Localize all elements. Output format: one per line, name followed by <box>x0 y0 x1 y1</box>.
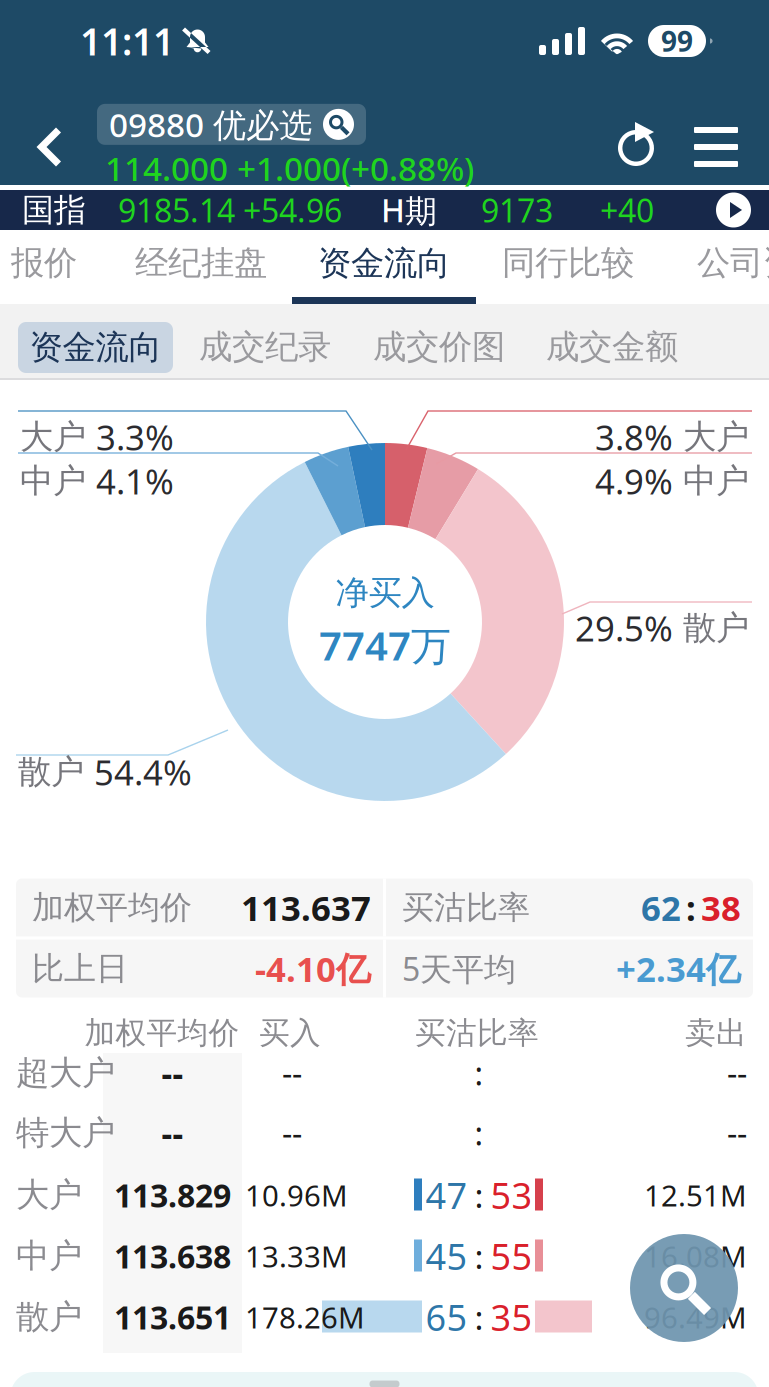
staticText: 114.000 +1.000(+0.88%) <box>105 146 474 190</box>
button[interactable]: 同行比较 <box>476 230 660 296</box>
staticText: 45 <box>425 1232 467 1280</box>
staticText: -- <box>161 1051 183 1095</box>
button[interactable]: 成交纪录 <box>190 322 340 372</box>
staticText: 11:11 <box>80 16 174 66</box>
staticText: 大户 <box>16 1174 82 1215</box>
staticText: -4.10亿 <box>255 945 371 991</box>
staticText: 178.26M <box>245 1297 365 1336</box>
button[interactable]: 资金流向 <box>292 230 476 304</box>
staticText: 净买入 <box>335 572 434 613</box>
button[interactable]: Menu <box>685 99 747 195</box>
button[interactable]: Back <box>0 99 97 195</box>
staticText: 55 <box>490 1232 532 1280</box>
staticText: 买沽比率 <box>402 888 530 927</box>
staticText: 62 <box>641 884 681 930</box>
staticText: : <box>474 1112 483 1154</box>
staticText: 卖出 <box>685 1014 747 1052</box>
staticText: 经纪挂盘 <box>135 242 267 283</box>
staticText: 99 <box>661 22 693 60</box>
staticText: 29.5% <box>575 605 673 651</box>
staticText: 10.96M <box>245 1175 348 1214</box>
button[interactable]: 报价 <box>0 230 104 296</box>
staticText: 中户 <box>20 460 86 501</box>
staticText: -- <box>727 1112 747 1154</box>
button[interactable]: Search <box>630 1234 738 1342</box>
staticText: 资金流向 <box>318 243 450 284</box>
staticText: 散户 <box>16 1296 82 1337</box>
staticText: 65 <box>425 1293 467 1341</box>
staticText: 9173 <box>481 189 553 231</box>
staticText: H期 <box>381 189 437 231</box>
staticText: -- <box>727 1052 747 1094</box>
staticText: 9185.14 <box>118 189 235 231</box>
staticText: 同行比较 <box>502 242 634 283</box>
staticText: : <box>686 884 696 930</box>
staticText: 散户 <box>683 607 749 648</box>
staticText: 比上日 <box>32 949 128 988</box>
staticText: +54.96 <box>243 189 342 231</box>
staticText: 3.8% <box>595 414 673 460</box>
staticText: 成交纪录 <box>199 326 331 367</box>
staticText: 加权平均价 <box>84 1014 239 1052</box>
staticText: 5天平均 <box>402 947 516 990</box>
button[interactable]: Refresh <box>601 99 673 195</box>
staticText: 53 <box>490 1171 532 1219</box>
staticText: : <box>474 1295 483 1339</box>
staticText: 大户 <box>683 416 749 457</box>
staticText: -- <box>282 1052 302 1094</box>
staticText: 超大户 <box>16 1052 115 1093</box>
staticText: +2.34亿 <box>616 945 741 991</box>
staticText: 国指 <box>22 190 86 230</box>
staticText: 买沽比率 <box>415 1014 539 1052</box>
staticText: 35 <box>490 1293 532 1341</box>
staticText: 特大户 <box>16 1112 115 1153</box>
staticText: -- <box>161 1111 183 1155</box>
button[interactable]: 09880 优必选 <box>97 104 366 145</box>
staticText: 公司资 <box>697 242 769 283</box>
staticText: 13.33M <box>245 1236 348 1275</box>
staticText: 96.49M <box>644 1297 747 1336</box>
button[interactable]: 经纪挂盘 <box>109 230 293 296</box>
button[interactable]: 资金流向 <box>18 322 173 373</box>
staticText: 113.637 <box>241 884 371 930</box>
button[interactable]: 公司资 <box>697 230 769 296</box>
staticText: 4.1% <box>96 458 174 504</box>
button[interactable]: Play <box>716 192 751 227</box>
staticText: 3.3% <box>96 414 174 460</box>
staticText: 加权平均价 <box>32 888 192 927</box>
staticText: : <box>474 1234 483 1278</box>
staticText: 散户 <box>18 751 84 792</box>
staticText: 资金流向 <box>29 327 161 368</box>
staticText: 买入 <box>259 1014 321 1052</box>
staticText: 113.638 <box>114 1235 231 1277</box>
staticText: 38 <box>701 884 741 930</box>
staticText: 4.9% <box>595 458 673 504</box>
staticText: +40 <box>600 189 654 231</box>
staticText: 113.829 <box>114 1174 231 1216</box>
staticText: : <box>474 1052 483 1094</box>
button[interactable]: 成交金额 <box>537 322 687 372</box>
staticText: : <box>474 1173 483 1217</box>
staticText: 47 <box>425 1171 467 1219</box>
staticText: 大户 <box>20 416 86 457</box>
staticText: 中户 <box>16 1235 82 1276</box>
button[interactable]: 成交价图 <box>364 322 514 372</box>
staticText: 54.4% <box>94 749 192 795</box>
staticText: 09880 优必选 <box>109 102 312 146</box>
staticText: 7747万 <box>319 618 451 671</box>
staticText: 12.51M <box>644 1175 747 1214</box>
staticText: 成交价图 <box>373 326 505 367</box>
staticText: 中户 <box>683 460 749 501</box>
staticText: 报价 <box>11 242 77 283</box>
staticText: 成交金额 <box>546 326 678 367</box>
staticText: 16.08M <box>644 1236 747 1275</box>
staticText: 113.651 <box>114 1296 231 1338</box>
staticText: -- <box>282 1112 302 1154</box>
